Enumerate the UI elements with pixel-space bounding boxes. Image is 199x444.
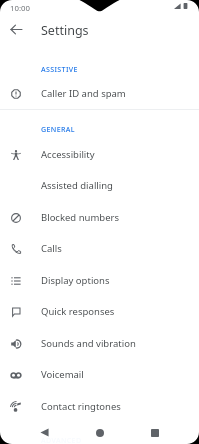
button[interactable]: Caller ID and spam <box>0 78 199 109</box>
staticText: Sounds and vibration <box>41 337 136 350</box>
staticText: Quick responses <box>41 305 115 318</box>
staticText: Display options <box>41 274 110 287</box>
staticText: 10:00 <box>10 3 30 14</box>
staticText: Contact ringtones <box>41 400 121 413</box>
button[interactable]: Recents <box>143 421 167 444</box>
button[interactable]: Calls <box>0 233 199 264</box>
button[interactable]: Assisted dialling <box>0 170 199 201</box>
staticText: Caller ID and spam <box>41 87 126 100</box>
button[interactable]: Blocked numbers <box>0 202 199 233</box>
staticText: ADVANCED <box>41 435 82 444</box>
staticText: Calls <box>41 242 62 255</box>
button[interactable]: Contact ringtones <box>0 391 199 422</box>
staticText: Settings <box>41 22 89 39</box>
button[interactable]: Back <box>32 421 56 444</box>
staticText: Blocked numbers <box>41 211 119 224</box>
button[interactable]: Home <box>88 421 112 444</box>
staticText: Accessibility <box>41 148 95 161</box>
button[interactable]: Accessibility <box>0 139 199 170</box>
staticText: GENERAL <box>41 124 75 134</box>
button[interactable]: Voicemail <box>0 359 199 390</box>
staticText: Voicemail <box>41 368 84 381</box>
button[interactable]: Quick responses <box>0 296 199 327</box>
staticText: Assisted dialling <box>41 179 113 192</box>
button[interactable]: Back <box>1 14 31 44</box>
button[interactable]: Display options <box>0 265 199 296</box>
button[interactable]: Sounds and vibration <box>0 328 199 359</box>
staticText: ASSISTIVE <box>41 64 78 74</box>
